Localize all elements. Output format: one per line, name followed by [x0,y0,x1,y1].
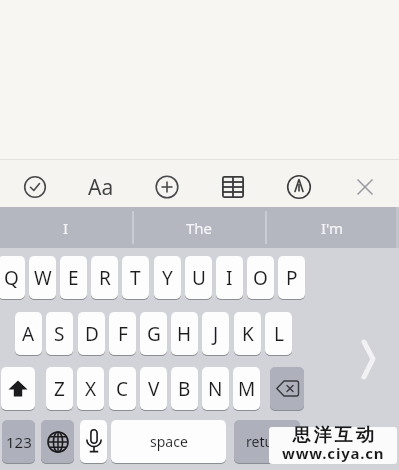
button[interactable] [147,167,187,207]
staticText: E [68,265,79,291]
button[interactable]: I'm [266,207,399,248]
button[interactable] [15,167,55,207]
button[interactable] [279,167,319,207]
staticText: space [150,432,188,451]
staticText: F [118,321,128,347]
button[interactable]: return [234,420,300,464]
button[interactable]: V [140,367,167,411]
staticText: P [286,265,298,291]
staticText: K [242,321,254,347]
staticText: G [147,321,161,347]
staticText: Q [4,265,19,291]
button[interactable]: L [265,312,292,356]
staticText: I'm [321,218,344,238]
button[interactable]: C [109,367,136,411]
staticText: Aa [88,173,114,202]
button[interactable]: B [171,367,198,411]
button[interactable]: Q [0,256,25,300]
button[interactable]: N [202,367,229,411]
staticText: A [22,321,35,347]
staticText: J [213,321,219,347]
button[interactable]: I [216,256,243,300]
staticText: I [63,218,69,238]
button[interactable]: Z [46,367,73,411]
staticText: S [54,321,65,347]
staticText: M [238,376,256,402]
button[interactable] [350,330,390,390]
button[interactable]: Aa [81,167,121,207]
staticText: I [226,265,233,291]
button[interactable]: F [109,312,136,356]
staticText: 123 [6,432,32,452]
button[interactable]: A [15,312,42,356]
button[interactable]: O [247,256,274,300]
button[interactable]: I [0,207,132,248]
button[interactable]: U [185,256,212,300]
staticText: T [130,265,141,291]
button[interactable]: X [77,367,104,411]
button[interactable]: D [78,312,105,356]
staticText: H [177,321,192,347]
button[interactable]: H [171,312,198,356]
staticText: return [246,432,288,451]
button[interactable] [270,367,304,411]
button[interactable] [41,420,74,464]
button[interactable]: 123 [2,420,35,464]
staticText: W [34,265,52,291]
button[interactable] [80,420,107,464]
staticText: The [186,218,213,238]
button[interactable]: G [140,312,167,356]
button[interactable]: E [60,256,87,300]
button[interactable]: S [46,312,73,356]
button[interactable]: The [133,207,265,248]
staticText: C [116,376,129,402]
button[interactable]: P [278,256,305,300]
staticText: D [85,321,99,347]
button[interactable]: W [29,256,56,300]
staticText: B [178,376,191,402]
button[interactable]: K [234,312,261,356]
button[interactable]: M [233,367,260,411]
button[interactable]: space [111,420,226,464]
staticText: N [208,376,223,402]
staticText: L [274,321,284,347]
button[interactable]: J [202,312,229,356]
button[interactable]: Y [154,256,181,300]
staticText: U [192,265,206,291]
staticText: Z [54,376,65,402]
button[interactable]: T [122,256,149,300]
staticText: 思洋互动 [291,424,375,447]
staticText: V [148,376,160,402]
staticText: Y [162,265,173,291]
staticText: X [85,376,97,402]
button[interactable]: R [91,256,118,300]
staticText: O [253,265,268,291]
staticText: www.ciya.cn [282,443,385,463]
button[interactable] [213,167,253,207]
button[interactable] [345,167,385,207]
button[interactable] [1,367,35,411]
staticText: R [99,265,111,291]
